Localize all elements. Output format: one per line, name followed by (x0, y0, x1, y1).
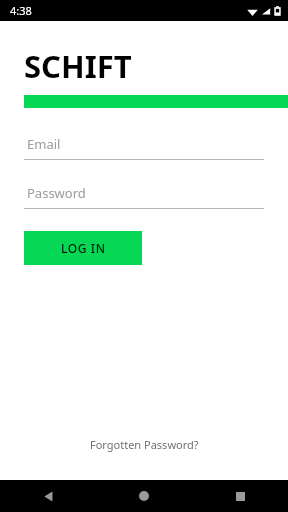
staticText: SCHIFT (24, 45, 132, 87)
staticText: Email (27, 135, 61, 153)
button[interactable]: Home (96, 480, 192, 512)
button[interactable]: Email (24, 135, 264, 160)
button[interactable]: Password (24, 184, 264, 209)
staticText: Password (27, 184, 86, 202)
button[interactable]: Recent apps (192, 480, 288, 512)
button[interactable]: Back (0, 480, 96, 512)
staticText: 4:38 (10, 3, 32, 18)
button[interactable]: Forgotten Password? (80, 432, 209, 457)
button[interactable]: LOG IN (24, 231, 142, 265)
staticText: LOG IN (61, 240, 106, 256)
